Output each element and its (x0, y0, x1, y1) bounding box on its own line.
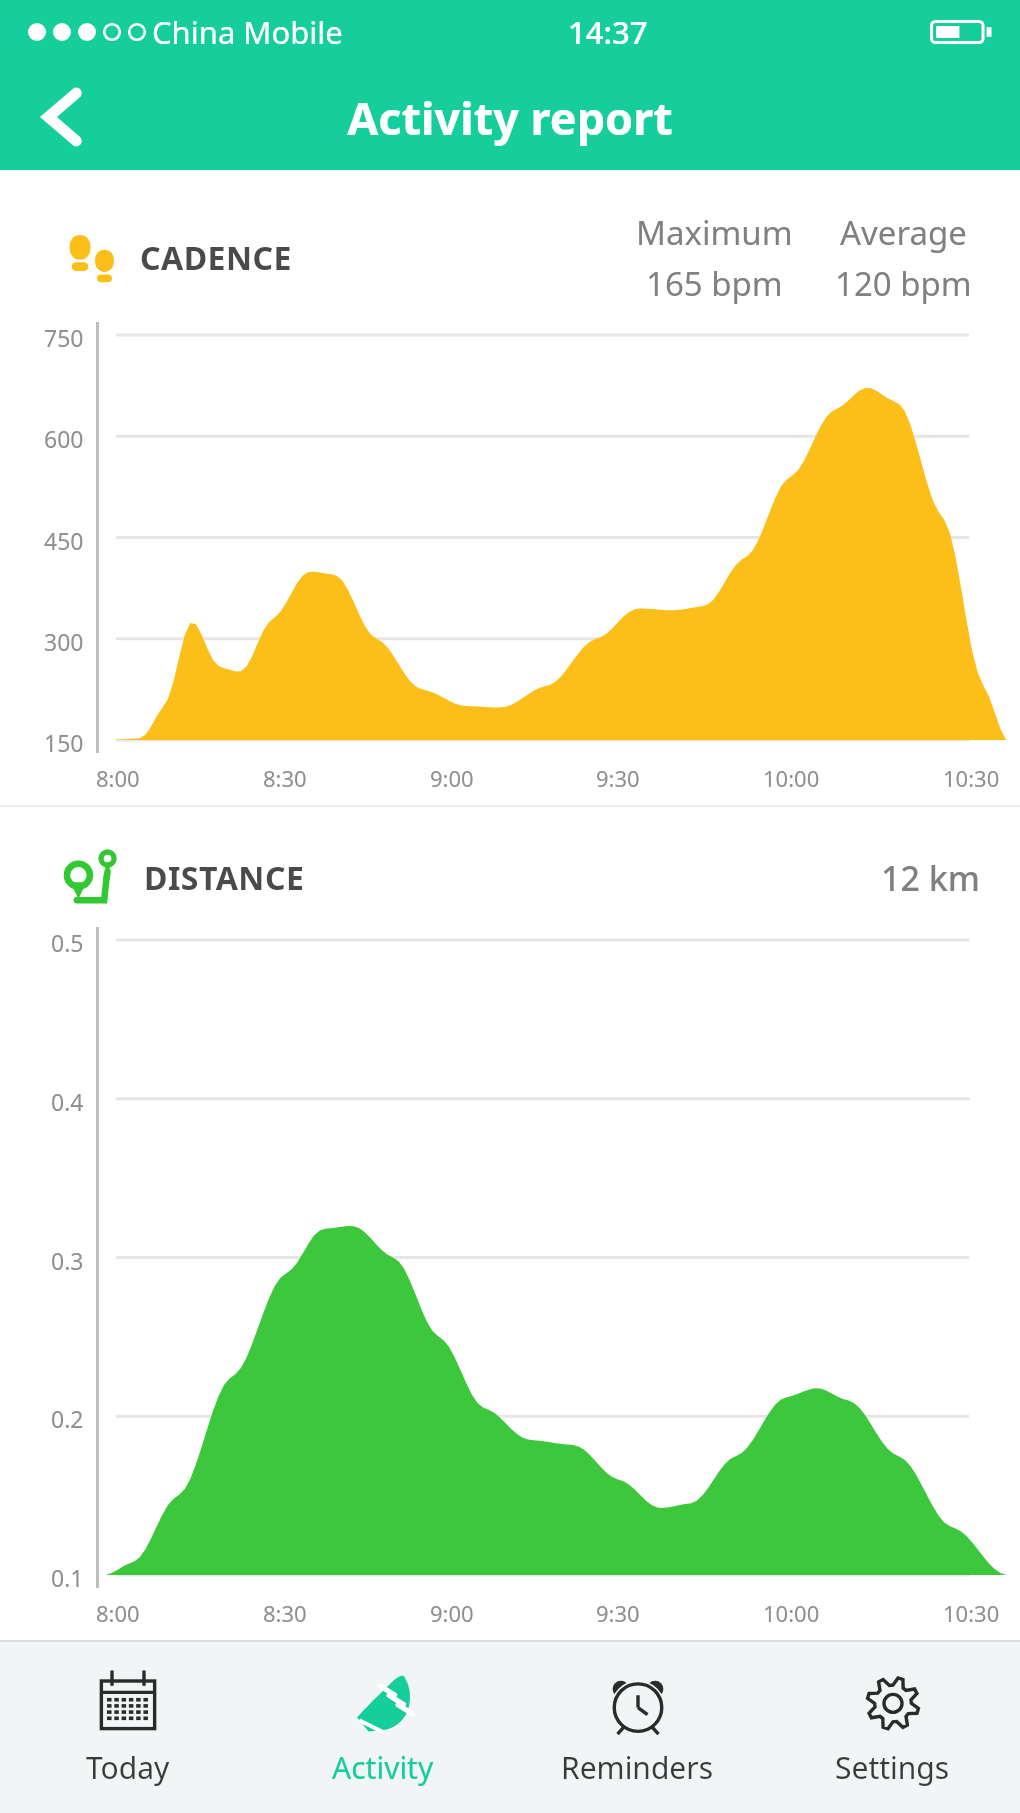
button[interactable]: Settings (765, 1642, 1020, 1813)
staticText: 10:30 (943, 1598, 1000, 1628)
staticText: 8:30 (263, 1598, 307, 1628)
staticText: 165 bpm (646, 261, 783, 306)
staticText: 14:37 (568, 11, 648, 53)
staticText: 10:00 (763, 763, 820, 793)
staticText: DISTANCE (144, 856, 305, 900)
staticText: 300 (44, 626, 84, 652)
staticText: Average (840, 210, 967, 255)
staticText: 750 (44, 322, 84, 348)
staticText: 600 (44, 423, 84, 449)
staticText: Activity (332, 1747, 434, 1788)
staticText: Reminders (561, 1747, 714, 1788)
staticText: Activity report (347, 87, 673, 148)
staticText: 0.5 (51, 927, 84, 953)
staticText: 0.4 (51, 1086, 84, 1112)
button[interactable]: Activity (255, 1642, 510, 1813)
staticText: 8:00 (96, 1598, 140, 1628)
staticText: 9:30 (596, 1598, 640, 1628)
staticText: 9:30 (596, 763, 640, 793)
staticText: 0.1 (51, 1562, 84, 1588)
staticText: Settings (835, 1747, 950, 1788)
staticText: China Mobile (152, 11, 343, 53)
staticText: 120 bpm (835, 261, 972, 306)
button[interactable]: Reminders (510, 1642, 765, 1813)
staticText: CADENCE (140, 236, 293, 280)
staticText: 0.2 (51, 1403, 84, 1429)
button[interactable]: Back (24, 79, 100, 155)
staticText: 8:00 (96, 763, 140, 793)
staticText: 10:30 (943, 763, 1000, 793)
staticText: 150 (44, 727, 84, 753)
staticText: 10:00 (763, 1598, 820, 1628)
staticText: 12 km (881, 855, 980, 901)
staticText: 9:00 (430, 1598, 474, 1628)
staticText: 450 (44, 525, 84, 551)
button[interactable]: Today (0, 1642, 255, 1813)
staticText: 9:00 (430, 763, 474, 793)
staticText: Today (86, 1747, 170, 1788)
staticText: 0.3 (51, 1245, 84, 1271)
staticText: Maximum (636, 210, 793, 255)
staticText: 8:30 (263, 763, 307, 793)
